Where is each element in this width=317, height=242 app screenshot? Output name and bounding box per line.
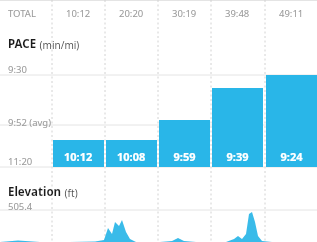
button[interactable]: Pace and elevation splits chart	[0, 0, 317, 242]
